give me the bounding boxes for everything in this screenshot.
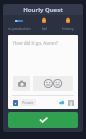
- button[interactable]: Confirm: [8, 112, 78, 128]
- button[interactable]: Add emoji: [33, 76, 73, 91]
- button[interactable]: How did it go, Aaron?: [8, 35, 78, 71]
- staticText: fail: [42, 26, 47, 31]
- button[interactable]: Add photo: [13, 76, 30, 91]
- staticText: Private: [22, 100, 34, 105]
- button[interactable]: in-production: [6, 15, 32, 33]
- button[interactable]: Share to Twitter: [58, 99, 65, 106]
- staticText: in-production: [8, 26, 31, 31]
- button[interactable]: fail: [32, 15, 56, 33]
- staticText: How did it go, Aaron?: [13, 40, 58, 46]
- staticText: history: [62, 26, 74, 31]
- staticText: Hourly Quest: [23, 6, 63, 14]
- button[interactable]: Private: [12, 98, 37, 107]
- button[interactable]: Share to Facebook: [67, 99, 74, 106]
- button[interactable]: history: [56, 15, 80, 33]
